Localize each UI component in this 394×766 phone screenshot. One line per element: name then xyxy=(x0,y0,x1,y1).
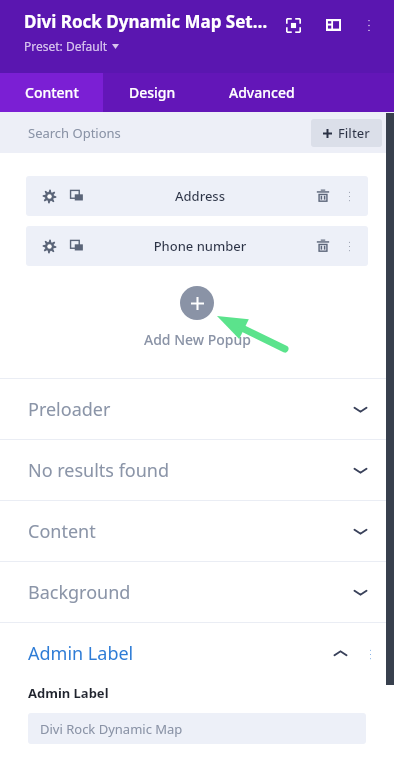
staticText: Advanced xyxy=(229,83,295,102)
button[interactable]: No results found xyxy=(0,440,394,501)
staticText: Content xyxy=(25,83,79,102)
staticText: Preloader xyxy=(28,397,353,422)
button[interactable]: Add New Popup xyxy=(0,286,394,349)
staticText: Address xyxy=(88,187,312,205)
staticText: Search Options xyxy=(28,124,121,142)
button[interactable]: Settings xyxy=(26,226,368,266)
button[interactable]: Duplicate xyxy=(66,235,88,257)
staticText: Add New Popup xyxy=(144,330,251,349)
button[interactable]: More options xyxy=(354,10,384,40)
button[interactable]: Layout xyxy=(318,10,348,40)
staticText: Admin Label xyxy=(28,684,109,702)
staticText: Admin Label xyxy=(28,641,333,666)
button[interactable]: Admin Label xyxy=(0,623,394,684)
button[interactable]: Duplicate xyxy=(66,185,88,207)
button[interactable]: Delete xyxy=(312,185,334,207)
button[interactable]: More options xyxy=(338,235,360,257)
button[interactable]: Content xyxy=(0,501,394,562)
button[interactable]: More options xyxy=(338,185,360,207)
staticText: Design xyxy=(129,83,176,102)
button[interactable]: Divi Rock Dynamic Map xyxy=(28,713,366,744)
staticText: Phone number xyxy=(88,237,312,255)
staticText: Filter xyxy=(338,124,370,142)
button[interactable]: Content xyxy=(0,73,103,112)
button[interactable]: Design xyxy=(103,73,202,112)
button[interactable]: Focus xyxy=(278,10,308,40)
button[interactable]: Advanced xyxy=(202,73,322,112)
staticText: Background xyxy=(28,580,353,605)
button[interactable]: Delete xyxy=(312,235,334,257)
staticText: Divi Rock Dynamic Map Set… xyxy=(24,10,268,33)
button[interactable]: More options xyxy=(360,644,380,664)
staticText: Content xyxy=(28,519,353,544)
button[interactable]: Settings xyxy=(26,176,368,216)
button[interactable]: Background xyxy=(0,562,394,623)
button[interactable]: Settings xyxy=(38,235,60,257)
button[interactable]: Filter xyxy=(311,119,382,147)
staticText: No results found xyxy=(28,458,353,483)
staticText: Divi Rock Dynamic Map xyxy=(40,720,183,738)
staticText: Preset: Default xyxy=(24,38,108,54)
button[interactable]: Settings xyxy=(38,185,60,207)
button[interactable]: Preloader xyxy=(0,379,394,440)
